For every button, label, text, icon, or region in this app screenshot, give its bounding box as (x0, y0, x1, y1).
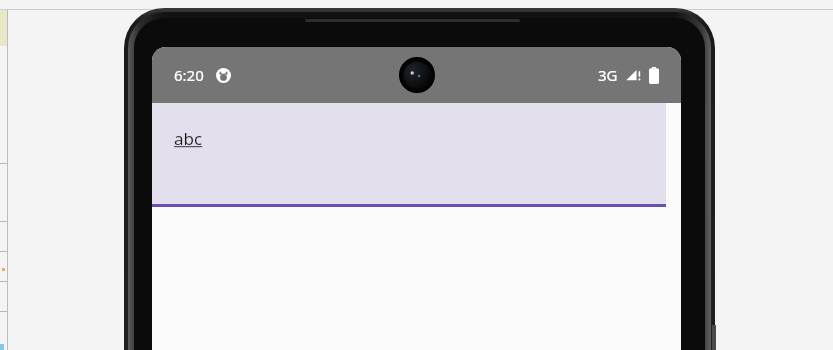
staticText: 3G (598, 65, 618, 85)
button[interactable]: abc (152, 103, 666, 207)
staticText: 6:20 (174, 65, 204, 85)
other: Camera (400, 58, 434, 92)
staticText: abc (174, 127, 203, 150)
